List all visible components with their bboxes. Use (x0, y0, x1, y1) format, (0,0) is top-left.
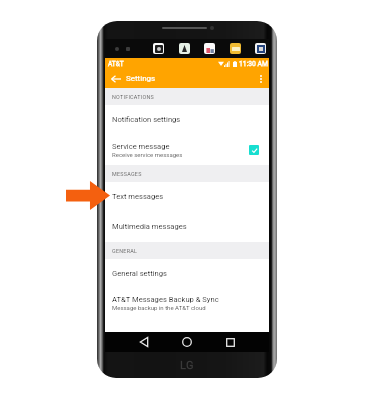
staticText: General settings (112, 269, 167, 278)
button[interactable]: Navigate up (106, 69, 126, 88)
staticText: Notification settings (112, 115, 181, 124)
staticText: Receive service messages (112, 151, 183, 158)
staticText: NOTIFICATIONS (112, 94, 154, 100)
staticText: Multimedia messages (112, 222, 187, 231)
staticText: AT&T (108, 60, 124, 68)
staticText: 11:30 AM (239, 60, 268, 68)
button[interactable]: Back (132, 332, 156, 352)
button[interactable]: Text messages (105, 182, 269, 211)
button[interactable]: Home (175, 332, 199, 352)
staticText: Service message (112, 142, 170, 151)
staticText: GENERAL (112, 248, 138, 254)
button[interactable]: AT&T Messages Backup & Sync (105, 288, 269, 318)
staticText: Message backup in the AT&T cloud (112, 304, 206, 311)
staticText: MESSAGES (112, 171, 142, 177)
button[interactable]: General settings (105, 259, 269, 288)
button[interactable]: Multimedia messages (105, 211, 269, 242)
button[interactable]: Service message (105, 134, 269, 165)
staticText: Settings (126, 74, 156, 83)
button[interactable]: Recent apps (218, 332, 242, 352)
button[interactable]: Notification settings (105, 105, 269, 134)
staticText: LG (180, 359, 195, 370)
staticText: AT&T Messages Backup & Sync (112, 295, 219, 304)
button[interactable]: More options (253, 69, 269, 88)
staticText: Text messages (112, 192, 164, 201)
